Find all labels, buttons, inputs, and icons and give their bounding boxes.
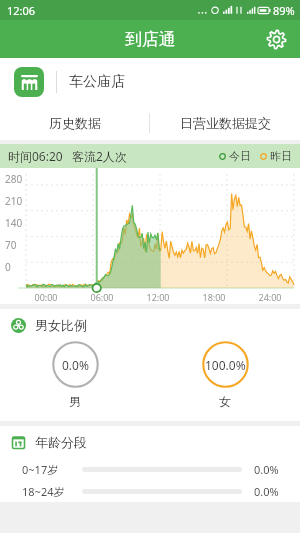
staticText: 到店通	[125, 29, 176, 50]
staticText: 0.0%	[254, 484, 286, 499]
staticText: 18:00	[186, 291, 242, 303]
staticText: 今日	[229, 149, 251, 163]
button[interactable]: 日营业数据提交	[150, 106, 300, 140]
staticText: 时间06:20	[8, 148, 63, 164]
staticText: 车公庙店	[69, 73, 125, 91]
staticText: 12:06	[7, 3, 36, 18]
staticText: 89%	[273, 3, 295, 18]
staticText: 12:00	[130, 291, 186, 303]
button[interactable]: 0.0%	[0, 341, 150, 409]
staticText: 昨日	[270, 149, 292, 163]
staticText: 00:00	[18, 291, 74, 303]
staticText: 24:00	[242, 291, 298, 303]
staticText: 客流2人次	[72, 148, 127, 164]
staticText: 100.0%	[205, 357, 246, 373]
staticText: 06:00	[74, 291, 130, 303]
staticText: 0.0%	[254, 462, 286, 477]
button[interactable]: 18~24岁	[22, 480, 286, 502]
staticText: 男	[69, 394, 81, 409]
staticText: 140	[5, 216, 23, 230]
staticText: 日营业数据提交	[180, 115, 271, 131]
staticText: 210	[5, 194, 23, 208]
button[interactable]: 车公庙店	[0, 58, 300, 106]
staticText: 0	[5, 260, 11, 274]
staticText: 历史数据	[49, 115, 101, 131]
staticText: 70	[5, 238, 17, 252]
staticText: 年龄分段	[35, 434, 87, 450]
staticText: 0.0%	[62, 357, 89, 373]
button[interactable]: 历史数据	[0, 106, 149, 140]
staticText: 0~17岁	[22, 462, 74, 477]
staticText: 18~24岁	[22, 484, 74, 499]
staticText: 男女比例	[35, 317, 87, 333]
staticText: 280	[5, 172, 23, 186]
staticText: 女	[219, 394, 231, 409]
button[interactable]: 100.0%	[150, 341, 300, 409]
button[interactable]: 0~17岁	[22, 458, 286, 480]
button[interactable]: Settings	[260, 23, 292, 55]
